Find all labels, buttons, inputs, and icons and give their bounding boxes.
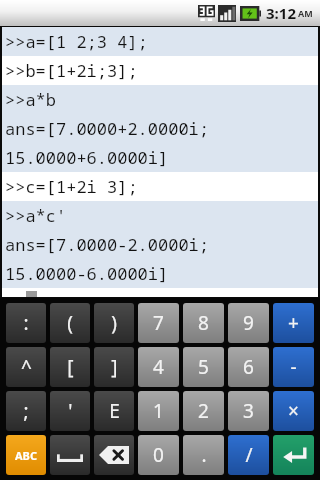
button[interactable]: 5 bbox=[183, 347, 224, 387]
staticText: ( bbox=[67, 310, 73, 336]
staticText: 4 bbox=[153, 354, 164, 380]
staticText: × bbox=[288, 398, 299, 424]
staticText: 9 bbox=[243, 310, 254, 336]
button[interactable]: ] bbox=[94, 347, 134, 387]
staticText: >>a*b bbox=[5, 88, 56, 111]
button[interactable]: 6 bbox=[228, 347, 269, 387]
button[interactable]: ; bbox=[6, 391, 46, 431]
staticText: ' bbox=[68, 398, 73, 424]
staticText: ABC bbox=[15, 448, 37, 463]
staticText: ; bbox=[23, 398, 29, 424]
staticText: 3 bbox=[243, 398, 254, 424]
staticText: >>a*c' bbox=[5, 204, 67, 227]
staticText: 7 bbox=[153, 310, 164, 336]
button[interactable]: Backspace bbox=[94, 435, 134, 475]
button[interactable]: Space bbox=[50, 435, 90, 475]
staticText: 0 bbox=[153, 442, 164, 468]
button[interactable]: 4 bbox=[138, 347, 179, 387]
staticText: : bbox=[23, 310, 29, 336]
button[interactable]: 3 bbox=[228, 391, 269, 431]
staticText: 1 bbox=[153, 398, 164, 424]
staticText: >>c=[1+2i 3]; bbox=[5, 175, 138, 198]
staticText: 2 bbox=[198, 398, 209, 424]
staticText: 8 bbox=[198, 310, 209, 336]
button[interactable]: 0 bbox=[138, 435, 179, 475]
button[interactable]: 7 bbox=[138, 303, 179, 343]
staticText: >>b=[1+2i;3]; bbox=[5, 59, 138, 82]
staticText: ] bbox=[111, 354, 118, 380]
button[interactable]: 9 bbox=[228, 303, 269, 343]
button[interactable]: ^ bbox=[6, 347, 46, 387]
button[interactable]: : bbox=[6, 303, 46, 343]
staticText: 15.0000+6.0000i] bbox=[5, 146, 169, 169]
button[interactable]: / bbox=[228, 435, 269, 475]
button[interactable]: >>a=[1 2;3 4]; bbox=[2, 27, 318, 297]
staticText: 15.0000-6.0000i] bbox=[5, 262, 169, 285]
button[interactable]: - bbox=[273, 347, 314, 387]
staticText: [ bbox=[67, 354, 74, 380]
button[interactable]: + bbox=[273, 303, 314, 343]
staticText: . bbox=[201, 442, 207, 468]
button[interactable]: 2 bbox=[183, 391, 224, 431]
staticText: 6 bbox=[243, 354, 254, 380]
button[interactable]: ) bbox=[94, 303, 134, 343]
staticText: - bbox=[290, 354, 297, 380]
staticText: ^ bbox=[21, 354, 32, 380]
button[interactable]: Enter bbox=[273, 435, 314, 475]
staticText: 5 bbox=[198, 354, 209, 380]
button[interactable]: [ bbox=[50, 347, 90, 387]
staticText: 3:12 bbox=[266, 3, 296, 23]
staticText: ) bbox=[111, 310, 117, 336]
button[interactable]: ( bbox=[50, 303, 90, 343]
button[interactable]: × bbox=[273, 391, 314, 431]
staticText: + bbox=[288, 310, 299, 336]
button[interactable]: . bbox=[183, 435, 224, 475]
button[interactable]: ' bbox=[50, 391, 90, 431]
staticText: / bbox=[245, 442, 253, 468]
staticText: ans=[7.0000+2.0000i; bbox=[5, 117, 209, 140]
staticText: AM bbox=[298, 7, 313, 19]
button[interactable]: 8 bbox=[183, 303, 224, 343]
button[interactable]: E bbox=[94, 391, 134, 431]
button[interactable]: ABC bbox=[6, 435, 46, 475]
button[interactable]: 1 bbox=[138, 391, 179, 431]
staticText: ans=[7.0000-2.0000i; bbox=[5, 233, 209, 256]
staticText: E bbox=[109, 398, 120, 424]
staticText: >>a=[1 2;3 4]; bbox=[5, 30, 148, 53]
